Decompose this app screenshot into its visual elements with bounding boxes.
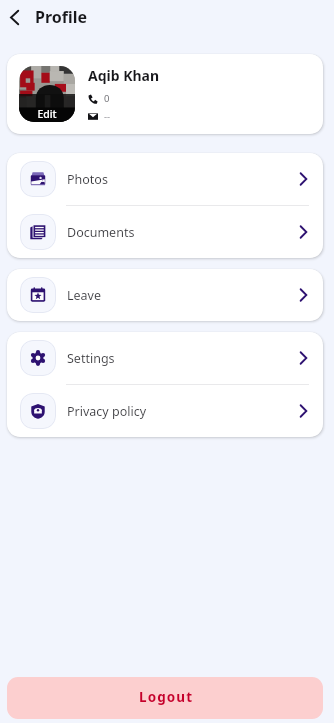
staticText: 0 [104, 92, 110, 105]
button[interactable]: Settings [7, 332, 323, 384]
staticText: Documents [67, 224, 135, 241]
staticText: Privacy policy [67, 403, 147, 420]
button[interactable]: Photos [7, 153, 323, 205]
staticText: Photos [67, 171, 108, 188]
other: Leave [299, 288, 308, 302]
other: Settings [299, 351, 308, 365]
staticText: Edit [37, 107, 57, 121]
staticText: Settings [67, 350, 115, 367]
other: Photos [299, 172, 308, 186]
staticText: Aqib Khan [88, 66, 160, 85]
other: Documents [299, 225, 308, 239]
staticText: Profile [35, 6, 88, 28]
button[interactable]: Privacy policy [7, 385, 323, 437]
button[interactable]: Leave [7, 269, 323, 321]
button[interactable]: Edit profile photo [19, 66, 75, 122]
other: Privacy policy [299, 404, 308, 418]
button[interactable]: Documents [7, 206, 323, 258]
staticText: Leave [67, 287, 102, 304]
button[interactable]: Back [3, 6, 26, 29]
button[interactable]: Logout [7, 677, 323, 719]
staticText: -- [104, 110, 111, 123]
staticText: Logout [139, 688, 194, 706]
